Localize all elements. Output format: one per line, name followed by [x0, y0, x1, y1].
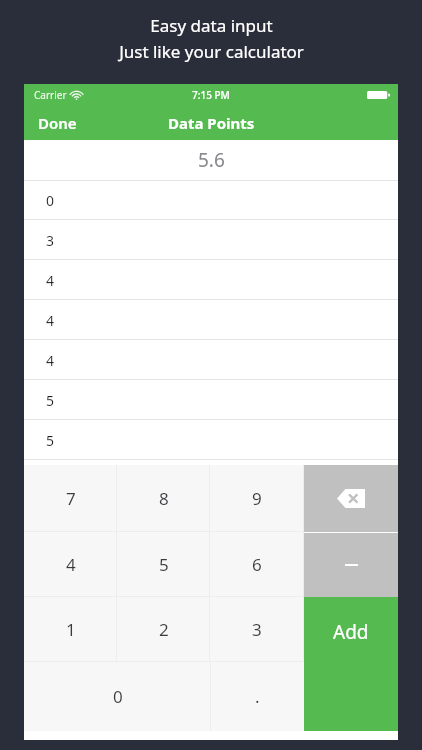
button[interactable]: 8: [117, 465, 210, 532]
button[interactable]: Backspace: [304, 465, 398, 532]
staticText: 0: [113, 685, 123, 708]
button[interactable]: .: [211, 662, 304, 731]
button[interactable]: 2: [117, 597, 210, 662]
staticText: 4: [46, 311, 55, 330]
button[interactable]: 4: [24, 532, 117, 597]
staticText: 1: [66, 618, 76, 641]
staticText: .: [255, 685, 260, 708]
staticText: 0: [46, 191, 55, 210]
staticText: 6: [252, 553, 262, 576]
button[interactable]: Minus: [304, 533, 398, 597]
button[interactable]: 4: [24, 300, 398, 340]
staticText: Just like your calculator: [119, 40, 304, 63]
staticText: 3: [252, 618, 262, 641]
staticText: 7:15 PM: [192, 88, 230, 102]
button[interactable]: 5: [24, 380, 398, 420]
staticText: 7: [66, 487, 76, 510]
staticText: 3: [46, 231, 55, 250]
staticText: Carrier: [34, 88, 67, 102]
button[interactable]: 6: [210, 532, 303, 597]
staticText: Data Points: [168, 113, 255, 133]
staticText: 5: [46, 431, 55, 450]
button[interactable]: Add: [304, 597, 398, 731]
staticText: 9: [252, 487, 262, 510]
staticText: Easy data input: [150, 14, 273, 37]
staticText: 5.6: [198, 147, 225, 173]
staticText: 5: [46, 391, 55, 410]
button[interactable]: 0: [24, 181, 398, 220]
button[interactable]: 4: [24, 260, 398, 300]
button[interactable]: 7: [24, 465, 117, 532]
staticText: 4: [46, 271, 55, 290]
button[interactable]: 5: [24, 420, 398, 460]
staticText: 5: [159, 553, 169, 576]
button[interactable]: 9: [210, 465, 303, 532]
button[interactable]: 3: [210, 597, 303, 662]
button[interactable]: Done: [24, 106, 91, 140]
staticText: Add: [333, 619, 369, 645]
button[interactable]: 1: [24, 597, 117, 662]
staticText: Done: [38, 113, 77, 133]
staticText: 4: [46, 351, 55, 370]
button[interactable]: 5: [117, 532, 210, 597]
staticText: 2: [159, 618, 169, 641]
button[interactable]: 4: [24, 340, 398, 380]
staticText: 4: [66, 553, 76, 576]
button[interactable]: 3: [24, 220, 398, 260]
button[interactable]: 0: [24, 662, 211, 731]
staticText: 8: [159, 487, 169, 510]
